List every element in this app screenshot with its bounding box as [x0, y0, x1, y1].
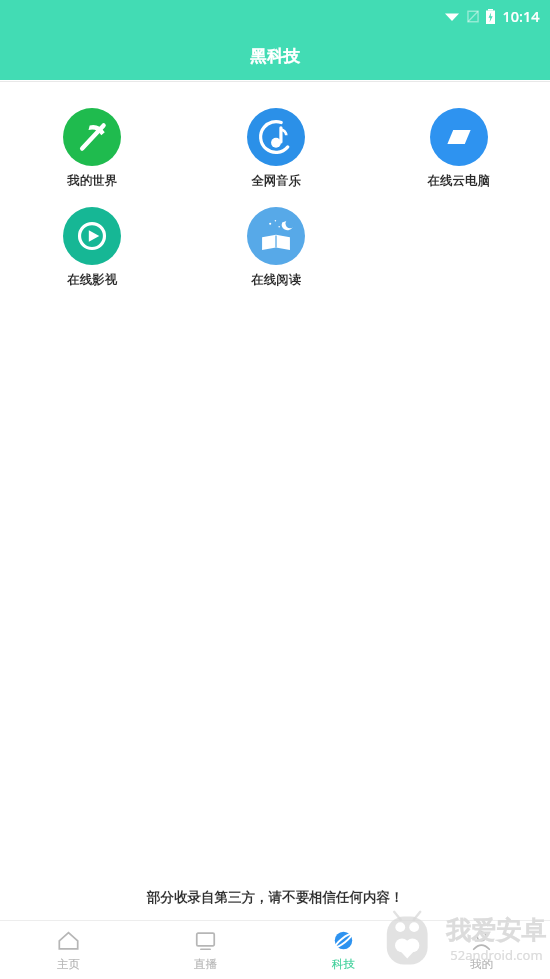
button[interactable]: 全网音乐: [241, 106, 311, 191]
button[interactable]: 主页: [0, 923, 137, 977]
staticText: 部分收录自第三方，请不要相信任何内容！: [0, 889, 550, 906]
staticText: 在线影视: [67, 272, 117, 288]
button[interactable]: 在线影视: [57, 205, 127, 290]
staticText: 在线云电脑: [427, 173, 490, 189]
button[interactable]: 我的世界: [57, 106, 127, 191]
staticText: 我爱安卓: [446, 915, 546, 946]
staticText: 全网音乐: [251, 173, 301, 189]
button[interactable]: 科技: [274, 923, 412, 977]
button[interactable]: 我的: [412, 923, 550, 977]
button[interactable]: 直播: [137, 923, 274, 977]
staticText: 我的: [470, 957, 493, 971]
staticText: 科技: [332, 957, 355, 971]
staticText: 10:14: [502, 6, 540, 26]
staticText: 52android.com: [450, 946, 543, 964]
staticText: 直播: [194, 957, 217, 971]
staticText: 黑科技: [250, 46, 300, 67]
staticText: 在线阅读: [251, 272, 301, 288]
button[interactable]: 在线阅读: [241, 205, 311, 290]
button[interactable]: 在线云电脑: [421, 106, 496, 191]
staticText: 我的世界: [67, 173, 117, 189]
staticText: 主页: [57, 957, 80, 971]
